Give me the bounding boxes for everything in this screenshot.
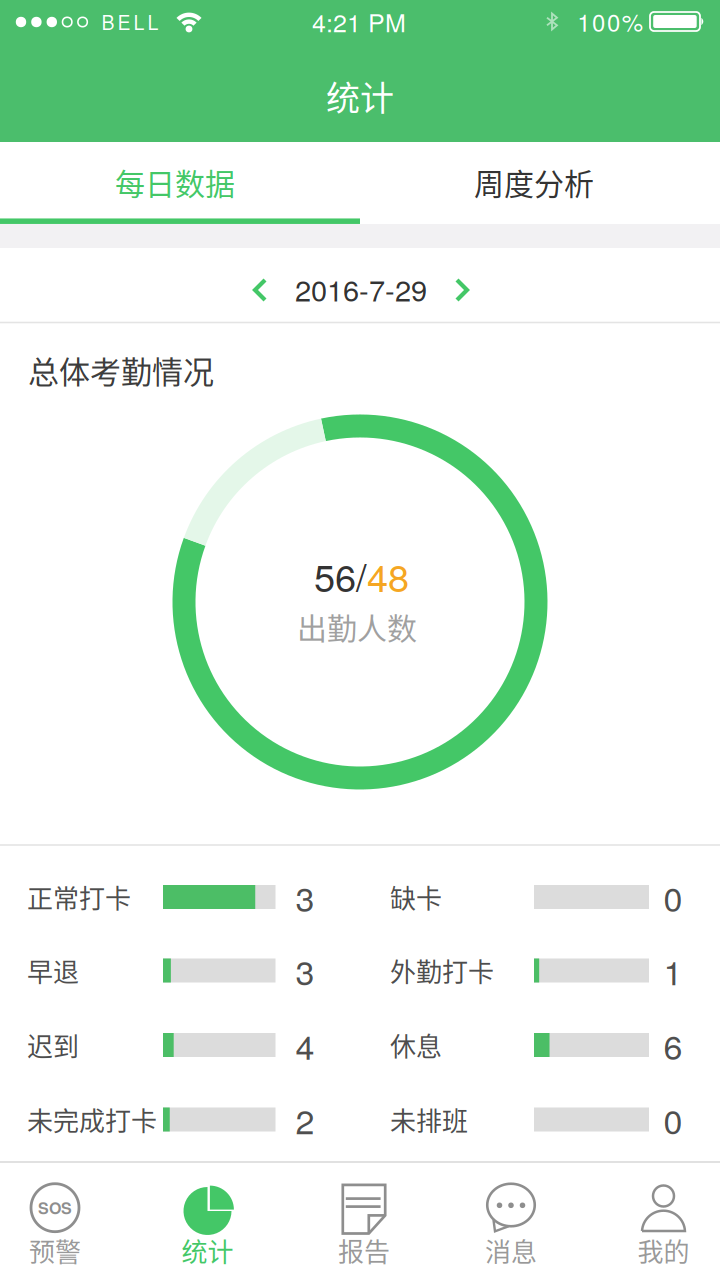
staticText: 早退 — [27, 952, 79, 989]
staticText: 6 — [663, 1021, 682, 1069]
staticText: 出勤人数 — [297, 605, 417, 648]
staticText: 未排班 — [390, 1101, 468, 1138]
button[interactable]: 统计 — [135, 1162, 279, 1278]
button[interactable]: 周度分析 — [354, 142, 714, 222]
staticText: 统计 — [326, 71, 394, 121]
staticText: 正常打卡 — [27, 878, 131, 916]
staticText: 0 — [663, 873, 682, 921]
staticText: 统计 — [181, 1232, 233, 1269]
staticText: 0 — [663, 1095, 682, 1144]
staticText: 2016-7-29 — [295, 268, 427, 310]
staticText: SOS — [38, 1196, 72, 1219]
staticText: 3 — [295, 946, 314, 995]
staticText: 1 — [663, 946, 682, 995]
button[interactable]: 报告 — [292, 1162, 436, 1278]
staticText: 外勤打卡 — [390, 952, 494, 989]
staticText: 100% — [577, 4, 643, 39]
staticText: 每日数据 — [115, 160, 235, 204]
staticText: 56/ — [314, 548, 367, 603]
button[interactable] — [238, 268, 282, 312]
staticText: 报告 — [338, 1232, 390, 1269]
staticText: 3 — [295, 873, 314, 921]
staticText: 休息 — [390, 1026, 442, 1064]
staticText: 周度分析 — [474, 160, 594, 204]
staticText: 预警 — [29, 1232, 81, 1269]
button[interactable]: 消息 — [439, 1162, 583, 1278]
staticText: 我的 — [637, 1232, 689, 1269]
button[interactable]: SOS — [0, 1162, 127, 1278]
staticText: 缺卡 — [390, 878, 442, 916]
button[interactable]: 我的 — [591, 1162, 720, 1278]
staticText: 2 — [295, 1095, 314, 1144]
staticText: 未完成打卡 — [27, 1101, 157, 1138]
staticText: 迟到 — [27, 1026, 79, 1064]
staticText: 4:21 PM — [312, 4, 406, 39]
button[interactable] — [440, 268, 484, 312]
button[interactable]: 每日数据 — [0, 142, 355, 222]
staticText: BELL — [101, 7, 158, 35]
staticText: 总体考勤情况 — [28, 348, 214, 392]
staticText: 4 — [295, 1021, 314, 1069]
staticText: 48 — [367, 548, 409, 603]
staticText: 消息 — [485, 1232, 537, 1269]
